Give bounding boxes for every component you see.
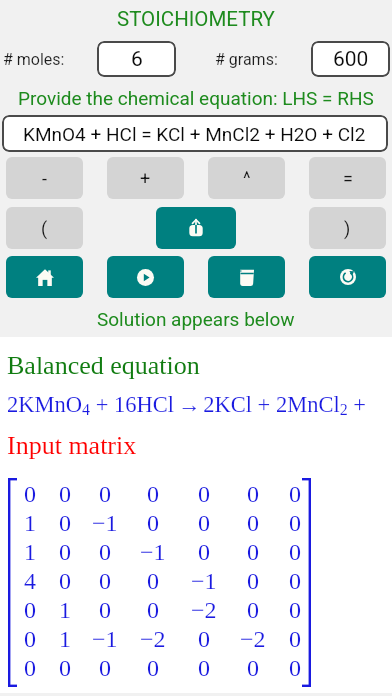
staticText: 0 xyxy=(198,655,210,682)
button[interactable]: + xyxy=(107,157,184,199)
staticText: 0 xyxy=(247,510,259,537)
staticText: 0 xyxy=(289,597,301,624)
staticText: 0 xyxy=(99,597,111,624)
staticText: 0 xyxy=(198,626,210,653)
staticText: 0 xyxy=(147,655,159,682)
staticText: Solution appears below xyxy=(97,308,295,330)
staticText: 0 xyxy=(247,568,259,595)
staticText: 0 xyxy=(247,481,259,508)
staticText: −2 xyxy=(191,597,217,624)
staticText: 0 xyxy=(59,568,71,595)
staticText: 0 xyxy=(198,481,210,508)
staticText: 1 xyxy=(59,626,71,653)
button[interactable]: 600 xyxy=(311,41,390,77)
staticText: 0 xyxy=(24,597,36,624)
staticText: 0 xyxy=(24,481,36,508)
staticText: 0 xyxy=(289,510,301,537)
staticText: 1 xyxy=(24,539,36,566)
staticText: 1 xyxy=(24,510,36,537)
staticText: 4 xyxy=(24,568,36,595)
staticText: Provide the chemical equation: LHS = RHS xyxy=(18,87,374,109)
staticText: 0 xyxy=(247,539,259,566)
staticText: 0 xyxy=(289,481,301,508)
staticText: 0 xyxy=(289,568,301,595)
staticText: 0 xyxy=(147,481,159,508)
staticText: −2 xyxy=(140,626,166,653)
staticText: 0 xyxy=(99,539,111,566)
staticText: # moles: xyxy=(3,50,65,69)
button[interactable]: 6 xyxy=(97,41,176,77)
staticText: ( xyxy=(41,218,48,239)
staticText: 0 xyxy=(147,510,159,537)
staticText: 0 xyxy=(99,481,111,508)
staticText: KMnO4 + HCl = KCl + MnCl2 + H2O + Cl2 xyxy=(23,123,366,145)
staticText: −1 xyxy=(92,626,118,653)
staticText: 600 xyxy=(333,47,369,72)
staticText: −1 xyxy=(140,539,166,566)
staticText: 0 xyxy=(99,655,111,682)
button[interactable]: Home xyxy=(6,256,83,298)
button[interactable]: Refresh xyxy=(309,256,386,298)
staticText: ^ xyxy=(243,168,251,189)
staticText: Input matrix xyxy=(7,431,137,460)
staticText: Balanced equation xyxy=(7,351,200,380)
staticText: 0 xyxy=(289,539,301,566)
button[interactable]: KMnO4 + HCl = KCl + MnCl2 + H2O + Cl2 xyxy=(2,115,388,152)
staticText: 6 xyxy=(131,47,143,72)
staticText: 0 xyxy=(59,539,71,566)
staticText: STOICHIOMETRY xyxy=(117,7,275,31)
staticText: 0 xyxy=(198,510,210,537)
staticText: 0 xyxy=(59,510,71,537)
staticText: −2 xyxy=(240,626,266,653)
button[interactable]: Run xyxy=(107,256,184,298)
staticText: ) xyxy=(344,218,351,239)
staticText: 1 xyxy=(59,597,71,624)
button[interactable]: Upload xyxy=(156,207,236,249)
button[interactable]: ( xyxy=(6,207,83,249)
staticText: 0 xyxy=(247,655,259,682)
staticText: = xyxy=(343,168,353,189)
button[interactable]: - xyxy=(6,157,83,199)
staticText: 0 xyxy=(99,568,111,595)
staticText: 0 xyxy=(198,539,210,566)
staticText: −1 xyxy=(191,568,217,595)
staticText: 0 xyxy=(24,655,36,682)
staticText: −1 xyxy=(92,510,118,537)
staticText: 0 xyxy=(289,626,301,653)
button[interactable]: = xyxy=(309,157,386,199)
staticText: + xyxy=(140,168,151,189)
staticText: 0 xyxy=(289,655,301,682)
button[interactable]: Beaker xyxy=(208,256,285,298)
staticText: - xyxy=(42,168,47,189)
staticText: 0 xyxy=(24,626,36,653)
staticText: 0 xyxy=(147,568,159,595)
staticText: 2KMnO4 + 16HCl → 2KCl + 2MnCl2 + 8H2O xyxy=(7,392,392,419)
staticText: 0 xyxy=(59,481,71,508)
staticText: 0 xyxy=(147,597,159,624)
staticText: # grams: xyxy=(215,50,278,69)
staticText: 0 xyxy=(247,597,259,624)
button[interactable]: ^ xyxy=(208,157,285,199)
button[interactable]: ) xyxy=(309,207,386,249)
staticText: 0 xyxy=(59,655,71,682)
